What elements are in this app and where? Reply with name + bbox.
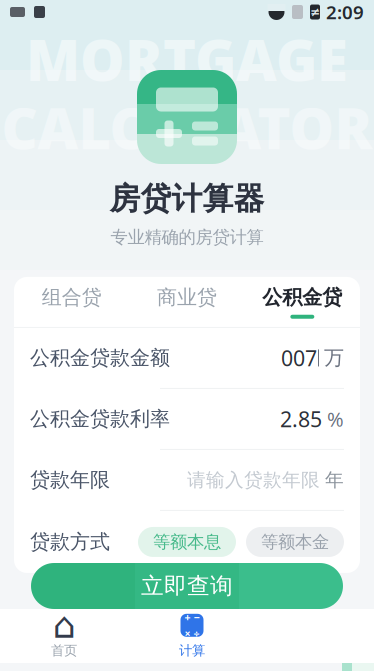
staticText: 房贷计算器 — [109, 180, 264, 218]
staticText: 计算 — [179, 642, 205, 659]
staticText: 首页 — [51, 642, 77, 659]
staticText: 公积金贷 — [262, 285, 342, 310]
staticText: 等额本金 — [261, 531, 329, 553]
button[interactable]: ⌂ — [0, 609, 128, 663]
staticText: 公积金贷款金额 — [30, 346, 170, 370]
button[interactable]: 贷款年限 — [14, 450, 360, 510]
staticText: − — [193, 610, 199, 624]
staticText: × — [184, 626, 190, 640]
button[interactable]: 公积金贷 — [245, 277, 360, 327]
staticText: 贷款方式 — [30, 530, 110, 554]
staticText: ⌂ — [52, 605, 75, 646]
staticText: 商业贷 — [157, 285, 217, 310]
staticText: 万 — [324, 346, 344, 370]
staticText: 年 — [325, 468, 344, 491]
staticText: % — [327, 406, 344, 432]
staticText: 2.85 — [280, 405, 322, 433]
staticText: 专业精确的房贷计算 — [110, 227, 263, 248]
staticText: + — [184, 610, 190, 624]
staticText: 2:09 — [326, 0, 364, 24]
button[interactable]: 公积金贷款金额 — [14, 328, 360, 388]
staticText: ≠ — [310, 5, 320, 19]
staticText: 等额本息 — [153, 531, 221, 553]
button[interactable]: 等额本息 — [138, 527, 236, 557]
button[interactable]: 商业贷 — [129, 277, 245, 327]
button[interactable]: 组合贷 — [14, 277, 129, 327]
staticText: 立即查询 — [141, 572, 233, 600]
staticText: ÷ — [193, 626, 199, 640]
staticText: 贷款年限 — [30, 468, 110, 492]
staticText: CALCULATOR — [1, 90, 372, 165]
staticText: 组合贷 — [42, 285, 102, 310]
staticText: 公积金贷款利率 — [30, 407, 170, 431]
button[interactable]: 等额本金 — [246, 527, 344, 557]
staticText: MORTGAGE — [26, 22, 348, 96]
button[interactable]: 立即查询 — [31, 563, 343, 609]
staticText: 请输入贷款年限 — [187, 468, 320, 491]
staticText: 007 — [281, 344, 317, 372]
button[interactable]: 公积金贷款利率 — [14, 389, 360, 449]
button[interactable]: + — [128, 609, 256, 663]
